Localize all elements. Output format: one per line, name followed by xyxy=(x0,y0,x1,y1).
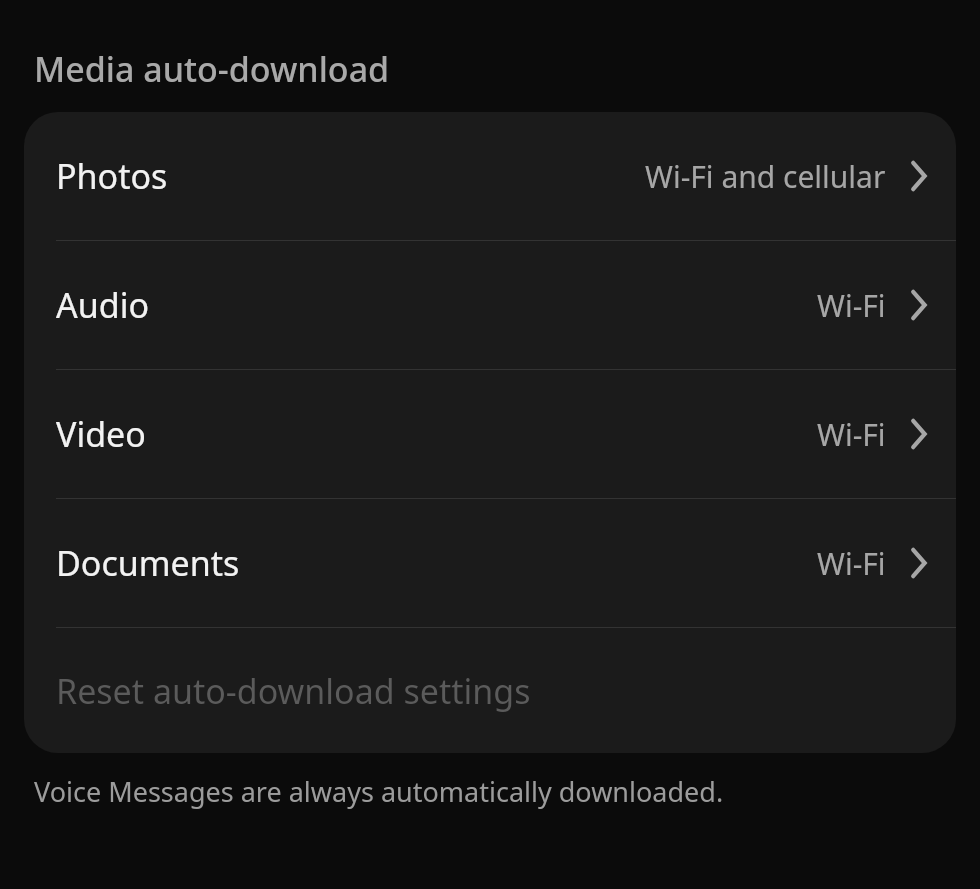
staticText: Documents xyxy=(56,540,240,586)
staticText: Audio xyxy=(56,282,149,328)
button[interactable]: Audio xyxy=(24,241,956,369)
button[interactable]: Photos xyxy=(24,112,956,240)
staticText: Media auto-download xyxy=(34,46,390,92)
staticText: Wi-Fi xyxy=(817,543,886,584)
staticText: Wi-Fi and cellular xyxy=(645,156,886,197)
button[interactable]: Video xyxy=(24,370,956,498)
button[interactable]: Reset auto-download settings xyxy=(24,628,956,753)
staticText: Voice Messages are always automatically … xyxy=(34,773,724,810)
staticText: Video xyxy=(56,411,146,457)
button[interactable]: Documents xyxy=(24,499,956,627)
staticText: Wi-Fi xyxy=(817,285,886,326)
staticText: Reset auto-download settings xyxy=(56,668,531,714)
staticText: Wi-Fi xyxy=(817,414,886,455)
staticText: Photos xyxy=(56,153,168,199)
